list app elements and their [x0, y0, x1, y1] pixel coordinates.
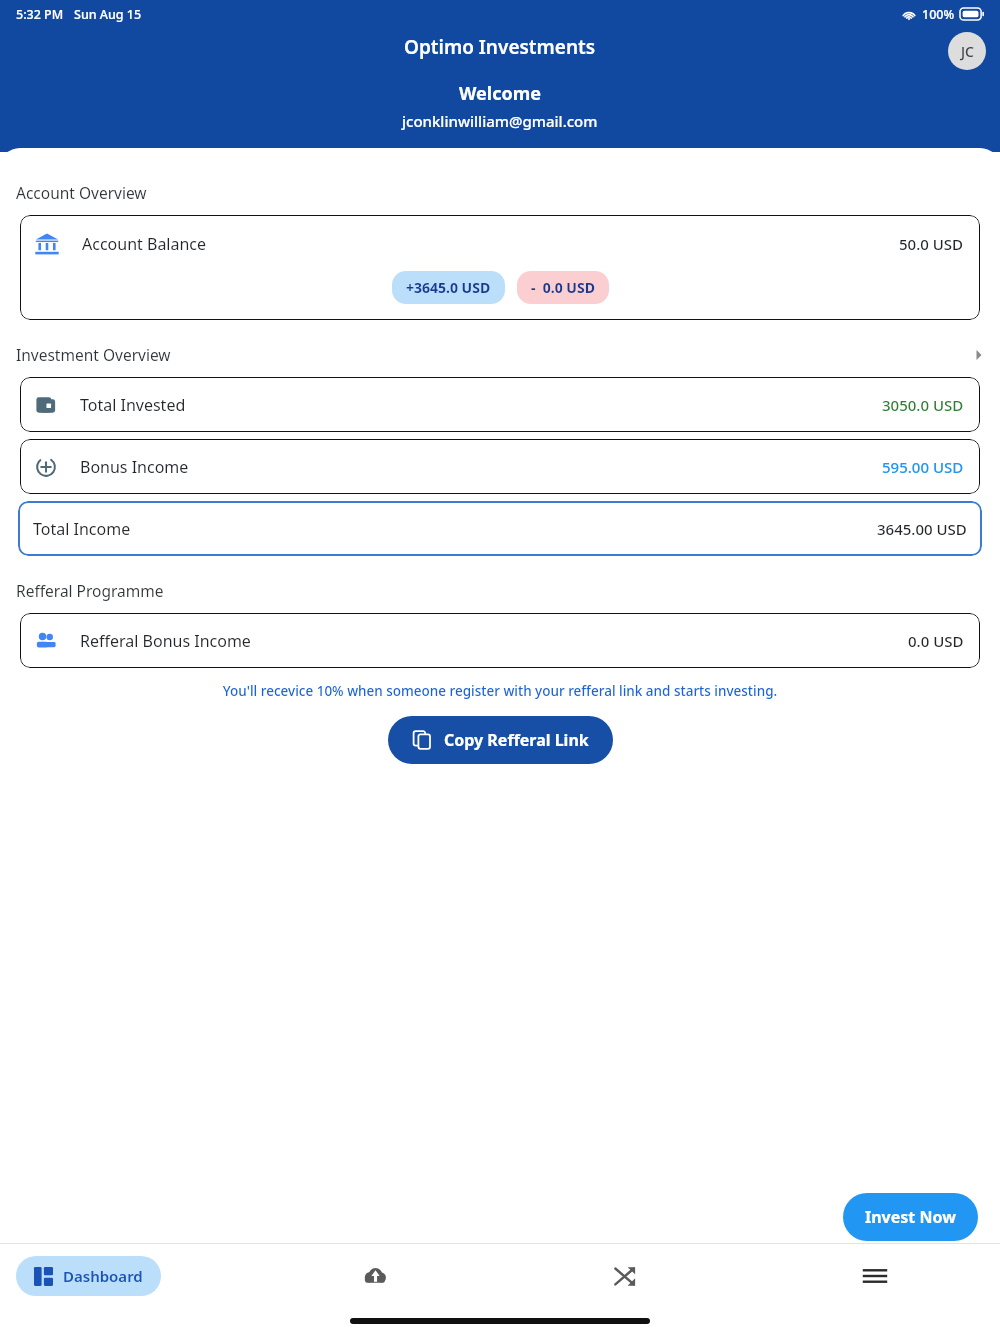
staticText: JC: [961, 42, 974, 61]
staticText: Refferal Bonus Income: [80, 630, 251, 652]
button[interactable]: Refferal Bonus Income: [20, 613, 980, 668]
staticText: - 0.0 USD: [531, 278, 595, 297]
staticText: Dashboard: [63, 1266, 143, 1286]
staticText: Total Invested: [80, 394, 186, 416]
staticText: 100%: [922, 6, 955, 23]
staticText: Bonus Income: [80, 456, 189, 478]
staticText: Total Income: [33, 518, 131, 540]
staticText: 50.0 USD: [899, 234, 964, 254]
button[interactable]: Expand investment overview: [974, 350, 984, 360]
button[interactable]: Dashboard: [16, 1256, 161, 1296]
button[interactable]: Total Income: [18, 501, 982, 556]
staticText: Welcome: [459, 81, 541, 106]
button[interactable]: Profile: [948, 32, 986, 70]
staticText: You'll recevice 10% when someone registe…: [16, 682, 984, 700]
staticText: jconklinwilliam@gmail.com: [402, 111, 598, 131]
button[interactable]: Account Balance: [20, 215, 980, 320]
button[interactable]: +3645.0 USD: [392, 271, 505, 304]
staticText: 5:32 PM: [16, 6, 64, 23]
staticText: Account Balance: [82, 233, 207, 255]
staticText: Copy Refferal Link: [444, 729, 589, 751]
button[interactable]: Transactions: [500, 1244, 750, 1308]
staticText: 595.00 USD: [882, 457, 964, 477]
staticText: Optimo Investments: [404, 34, 596, 60]
button[interactable]: - 0.0 USD: [517, 271, 609, 304]
button[interactable]: Copy Refferal Link: [388, 716, 613, 764]
button[interactable]: Invest Now: [843, 1193, 978, 1241]
staticText: +3645.0 USD: [406, 278, 491, 297]
staticText: Invest Now: [865, 1206, 956, 1228]
staticText: Refferal Programme: [16, 580, 164, 601]
staticText: 3645.00 USD: [877, 519, 967, 539]
staticText: Investment Overview: [16, 344, 171, 365]
staticText: Account Overview: [16, 182, 147, 203]
button[interactable]: Bonus Income: [20, 439, 980, 494]
staticText: 0.0 USD: [908, 631, 964, 651]
button[interactable]: Menu: [750, 1244, 1000, 1308]
button[interactable]: Upload: [250, 1244, 500, 1308]
button[interactable]: Total Invested: [20, 377, 980, 432]
staticText: 3050.0 USD: [882, 395, 964, 415]
staticText: Sun Aug 15: [74, 6, 142, 23]
